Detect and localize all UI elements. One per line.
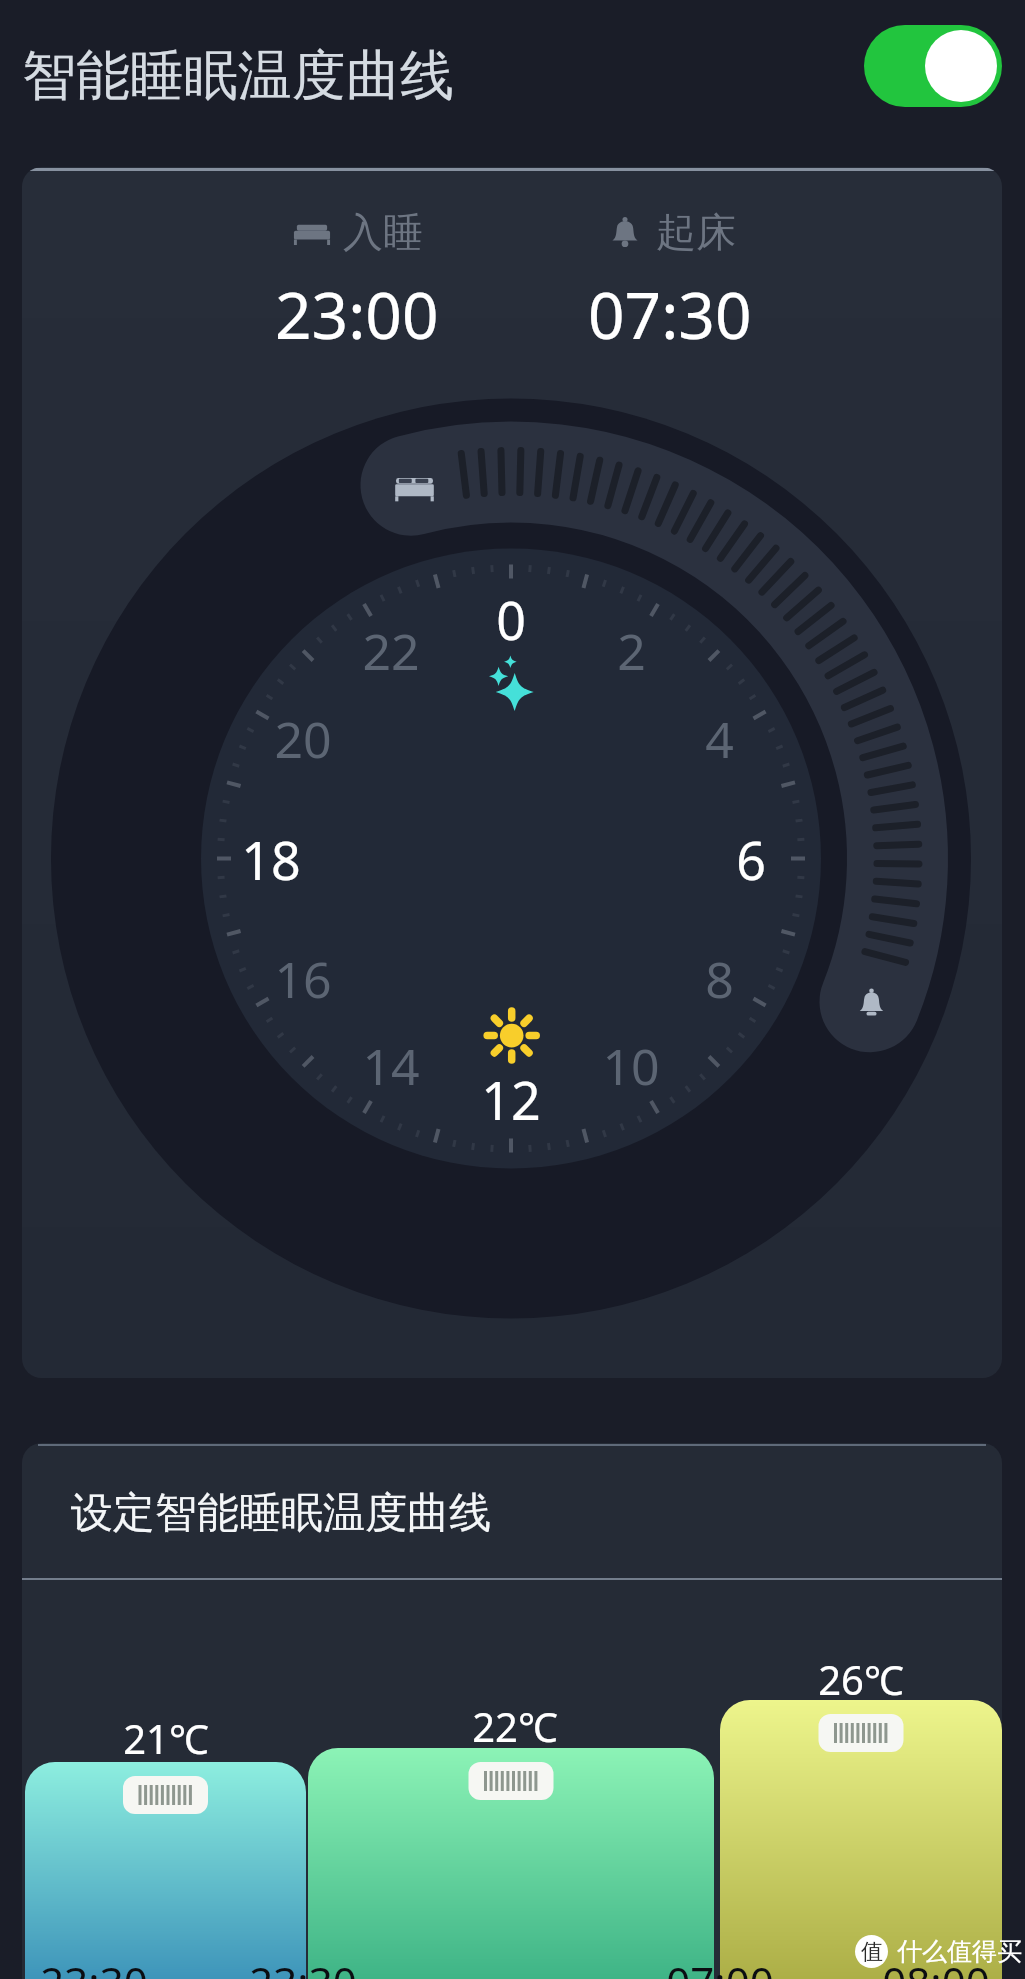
staticText: 20	[274, 705, 332, 773]
staticText: 2	[617, 617, 646, 685]
staticText: 6	[736, 824, 766, 895]
staticText: 08:00	[816, 1953, 1025, 1979]
staticText: 22℃	[395, 1699, 635, 1753]
staticText: 07:30	[588, 271, 752, 358]
button[interactable]: 起床	[552, 207, 788, 358]
staticText: 12	[481, 1064, 541, 1135]
staticText: 23:00	[275, 271, 439, 358]
staticText: 14	[362, 1032, 420, 1100]
staticText: 设定智能睡眠温度曲线	[71, 1487, 491, 1540]
button[interactable]: Set smart sleep temperature curve	[22, 1443, 1002, 1979]
staticText: 23:30	[0, 1953, 214, 1979]
staticText: 21℃	[46, 1711, 286, 1765]
staticText: 10	[602, 1032, 660, 1100]
staticText: 什么值得买	[897, 1936, 1022, 1967]
button[interactable]: Sleep schedule dial	[22, 167, 1002, 1378]
button[interactable]: 21 degrees segment	[25, 1762, 306, 1979]
staticText: 智能睡眠温度曲线	[22, 42, 454, 110]
staticText: 0	[496, 584, 526, 655]
staticText: 22	[362, 617, 420, 685]
staticText: 16	[274, 945, 332, 1013]
staticText: 18	[241, 824, 301, 895]
staticText: 07:00	[600, 1953, 840, 1979]
button[interactable]: Smart sleep temperature curve toggle	[864, 25, 1002, 107]
staticText: 值	[861, 1938, 883, 1966]
staticText: 4	[705, 705, 734, 773]
staticText: 8	[705, 945, 734, 1013]
staticText: 26℃	[741, 1652, 981, 1706]
button[interactable]: 26 degrees segment	[720, 1700, 1002, 1979]
button[interactable]: 22 degrees segment	[308, 1748, 714, 1979]
button[interactable]: 入睡	[239, 207, 475, 358]
staticText: 23:30	[183, 1953, 423, 1979]
staticText: 起床	[656, 207, 736, 257]
staticText: 入睡	[343, 207, 423, 257]
